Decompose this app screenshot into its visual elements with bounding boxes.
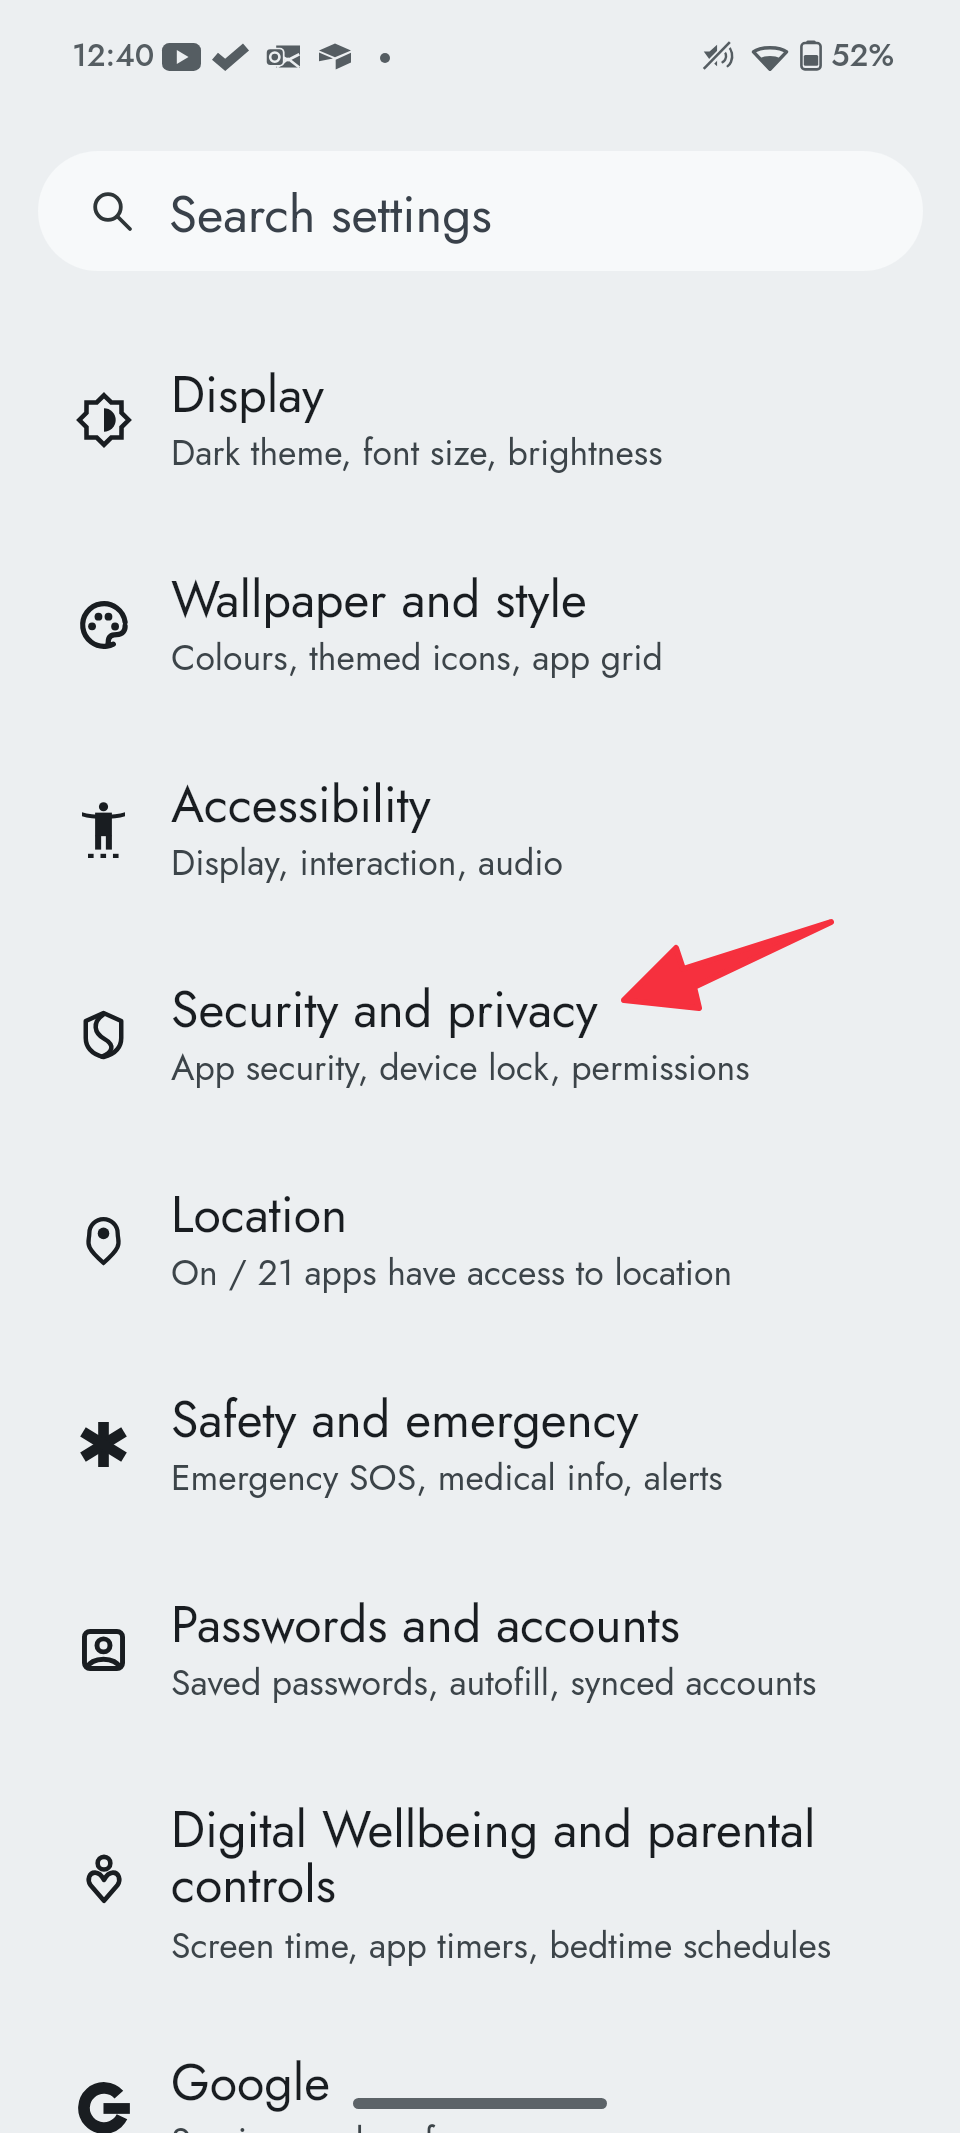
staticText: Google <box>171 2046 331 2118</box>
staticText: Dark theme, font size, brightness <box>171 427 663 478</box>
button[interactable]: Safety and emergency <box>0 1342 960 1547</box>
staticText: Digital Wellbeing and parental <box>171 1793 816 1865</box>
staticText: On / 21 apps have access to location <box>171 1247 733 1298</box>
button[interactable]: Security and privacy <box>0 932 960 1137</box>
staticText: Security and privacy <box>171 973 598 1045</box>
button[interactable]: Digital Wellbeing and parental <box>0 1752 960 2005</box>
staticText: Accessibility <box>171 768 431 840</box>
staticText: Display, interaction, audio <box>171 837 563 888</box>
staticText: App security, device lock, permissions <box>171 1042 750 1093</box>
staticText: Emergency SOS, medical info, alerts <box>171 1452 723 1503</box>
button[interactable]: Wallpaper and style <box>0 522 960 727</box>
staticText: controls <box>171 1848 336 1920</box>
button[interactable]: Search settings <box>38 151 923 271</box>
staticText: 12:40 <box>72 33 155 78</box>
staticText: 52% <box>831 33 894 78</box>
button[interactable]: Passwords and accounts <box>0 1547 960 1752</box>
staticText: Wallpaper and style <box>171 563 587 635</box>
button[interactable]: Display <box>0 317 960 522</box>
button[interactable]: Location <box>0 1137 960 1342</box>
staticText: Location <box>171 1178 348 1250</box>
staticText: Safety and emergency <box>171 1383 639 1455</box>
staticText: Screen time, app timers, bedtime schedul… <box>171 1920 832 1971</box>
staticText: Display <box>171 358 324 430</box>
staticText: Saved passwords, autofill, synced accoun… <box>171 1657 817 1708</box>
staticText: Passwords and accounts <box>171 1588 680 1660</box>
button[interactable]: Accessibility <box>0 727 960 932</box>
staticText: Search settings <box>169 177 492 251</box>
button[interactable]: Google <box>0 2005 960 2133</box>
staticText: Colours, themed icons, app grid <box>171 632 663 683</box>
staticText: Services and preferences <box>171 2115 552 2133</box>
